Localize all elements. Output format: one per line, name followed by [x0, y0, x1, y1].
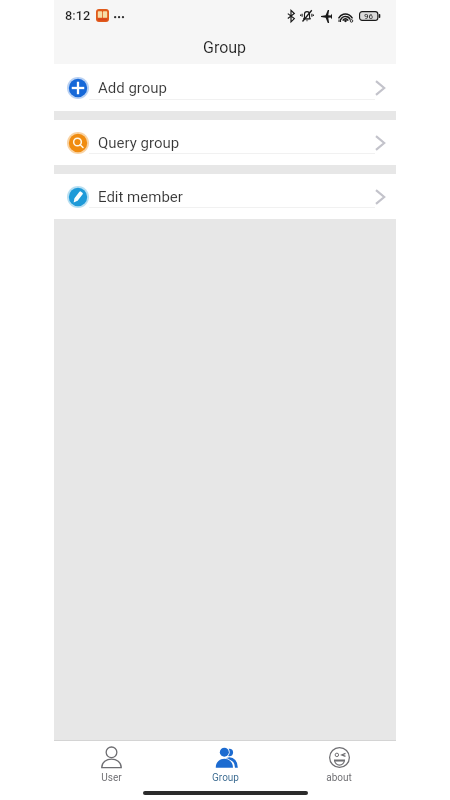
button[interactable]: User: [54, 741, 168, 783]
staticText: Query group: [98, 134, 180, 152]
staticText: Edit member: [98, 188, 183, 206]
staticText: 8:12: [65, 8, 91, 23]
staticText: User: [101, 772, 122, 783]
button[interactable]: Edit member: [54, 174, 396, 219]
button[interactable]: Add group: [54, 64, 396, 111]
staticText: Add group: [98, 79, 168, 97]
staticText: about: [326, 772, 352, 783]
staticText: 96: [364, 12, 374, 21]
staticText: Group: [203, 38, 247, 57]
staticText: Group: [212, 772, 239, 783]
button[interactable]: Query group: [54, 120, 396, 165]
button[interactable]: about: [282, 741, 396, 783]
button[interactable]: Group: [168, 741, 282, 783]
